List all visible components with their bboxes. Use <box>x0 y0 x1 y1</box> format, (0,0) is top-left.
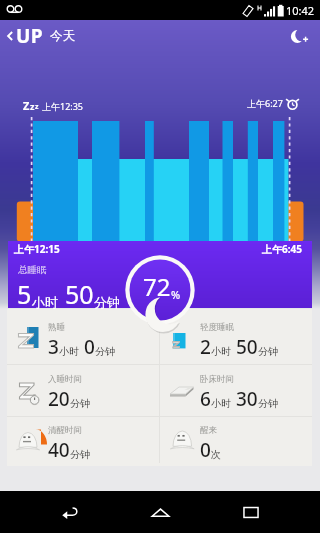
staticText: Z <box>23 98 30 113</box>
button[interactable]: 清醒时间 <box>7 417 159 466</box>
staticText: 分钟 <box>94 294 120 310</box>
staticText: 熟睡 <box>48 322 65 333</box>
button[interactable]: Back <box>47 491 91 533</box>
button[interactable]: UP <box>4 23 75 49</box>
staticText: 小时 <box>32 294 58 310</box>
staticText: % <box>171 287 181 302</box>
button[interactable]: 入睡时间 <box>7 365 159 416</box>
staticText: 0 <box>200 437 211 463</box>
staticText: 小时 <box>211 397 231 410</box>
staticText: 卧床时间 <box>200 374 234 385</box>
staticText: 20 <box>48 386 70 412</box>
button[interactable]: 总睡眠 <box>8 241 312 308</box>
staticText: 6 <box>200 386 211 412</box>
staticText: 0 <box>84 334 95 360</box>
staticText: 小时 <box>211 345 231 358</box>
staticText: z <box>30 100 35 112</box>
button[interactable]: Home <box>138 491 182 533</box>
staticText: 次 <box>211 448 221 461</box>
staticText: z <box>35 102 39 112</box>
button[interactable]: 轻度睡眠 <box>159 313 312 364</box>
staticText: 2 <box>200 334 211 360</box>
staticText: 清醒时间 <box>48 425 82 436</box>
button[interactable]: Sleep quality 72 percent <box>120 250 200 336</box>
staticText: 分钟 <box>95 345 115 358</box>
staticText: 分钟 <box>258 397 278 410</box>
staticText: 上午12:35 <box>42 100 84 112</box>
button[interactable]: Sleep mode <box>285 22 313 50</box>
staticText: 分钟 <box>70 448 90 461</box>
staticText: 5 <box>17 277 32 311</box>
staticText: 今天 <box>50 28 75 44</box>
staticText: 40 <box>48 437 70 463</box>
staticText: 轻度睡眠 <box>200 322 234 333</box>
button[interactable]: 卧床时间 <box>159 365 312 416</box>
staticText: 分钟 <box>70 397 90 410</box>
staticText: 50 <box>236 334 258 360</box>
staticText: 分钟 <box>258 345 278 358</box>
staticText: 入睡时间 <box>48 374 82 385</box>
button[interactable]: 醒来 <box>159 417 312 466</box>
button[interactable]: Recent apps <box>229 491 273 533</box>
staticText: 上午6:27 <box>247 97 283 109</box>
staticText: 72 <box>143 270 171 303</box>
staticText: UP <box>16 23 43 49</box>
staticText: 小时 <box>59 345 79 358</box>
staticText: 30 <box>236 386 258 412</box>
staticText: 3 <box>48 334 59 360</box>
staticText: 总睡眠 <box>18 264 47 276</box>
button[interactable]: 熟睡 <box>7 313 159 364</box>
staticText: 10:42 <box>286 3 315 18</box>
staticText: 50 <box>65 277 94 311</box>
staticText: 醒来 <box>200 425 217 436</box>
staticText: 上午12:15 <box>14 242 60 256</box>
staticText: 上午6:45 <box>262 242 302 256</box>
